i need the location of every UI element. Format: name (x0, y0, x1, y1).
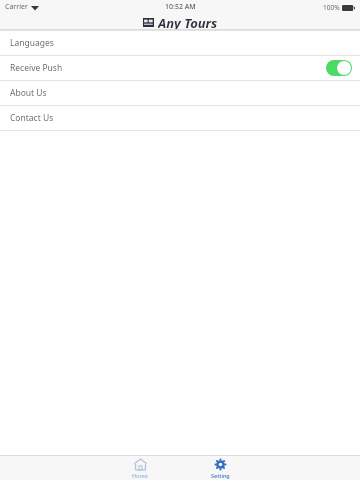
staticText: 10:52 AM (165, 2, 196, 12)
staticText: About Us (10, 87, 47, 99)
staticText: Contact Us (10, 112, 54, 124)
staticText: Home (132, 472, 148, 479)
staticText: Carrier (5, 2, 28, 12)
staticText: Setting (211, 472, 230, 479)
staticText: Languages (10, 37, 54, 49)
staticText: 100% (323, 3, 340, 12)
button[interactable]: Receive Push toggle, on (326, 60, 352, 76)
button[interactable]: Receive Push (0, 55, 360, 80)
button[interactable]: Setting (198, 456, 242, 480)
button[interactable]: Home (118, 456, 162, 480)
staticText: Any Tours (158, 14, 218, 30)
button[interactable]: Languages (0, 30, 360, 55)
button[interactable]: Contact Us (0, 105, 360, 130)
button[interactable]: About Us (0, 80, 360, 105)
staticText: Receive Push (10, 62, 63, 74)
